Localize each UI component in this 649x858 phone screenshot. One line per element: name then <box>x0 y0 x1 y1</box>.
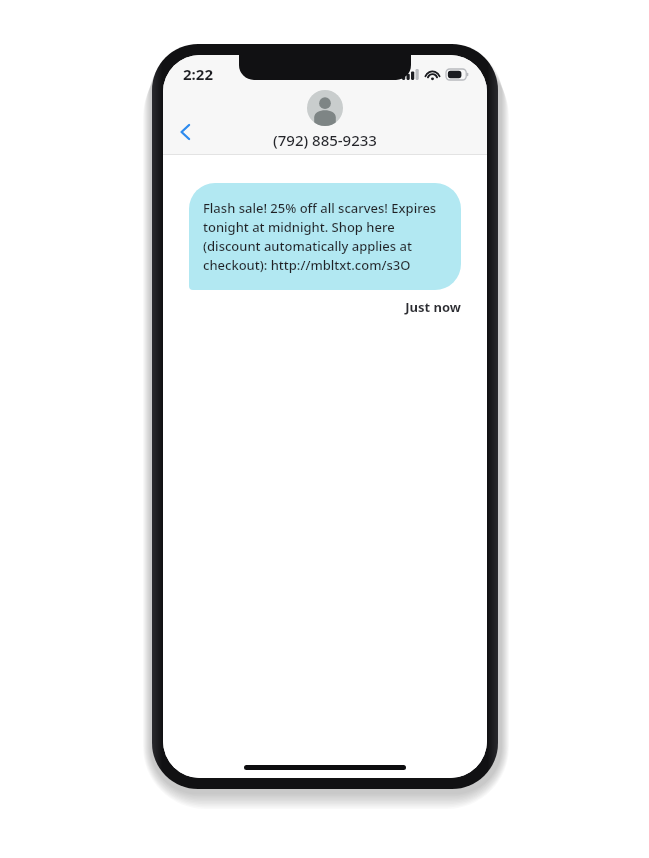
button[interactable]: Back <box>169 115 203 149</box>
button[interactable]: Flash sale! 25% off all scarves! Expires… <box>189 183 461 290</box>
staticText: Flash sale! 25% off all scarves! Expires… <box>203 199 447 274</box>
button[interactable]: Contact avatar <box>307 90 343 126</box>
staticText: Just now <box>189 298 461 316</box>
staticText: (792) 885-9233 <box>273 130 377 150</box>
staticText: 2:22 <box>183 64 213 84</box>
